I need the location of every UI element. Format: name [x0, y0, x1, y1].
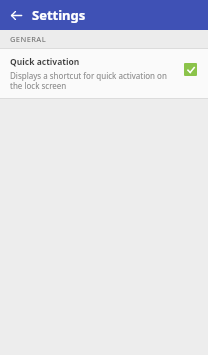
button[interactable]: Quick activation checkbox, checked: [180, 59, 200, 79]
staticText: Quick activation: [10, 56, 80, 68]
staticText: Settings: [32, 6, 86, 24]
staticText: Displays a shortcut for quick activation…: [10, 70, 174, 91]
staticText: GENERAL: [10, 34, 47, 44]
button[interactable]: Navigate up: [6, 5, 26, 25]
button[interactable]: Quick activation: [0, 49, 208, 98]
